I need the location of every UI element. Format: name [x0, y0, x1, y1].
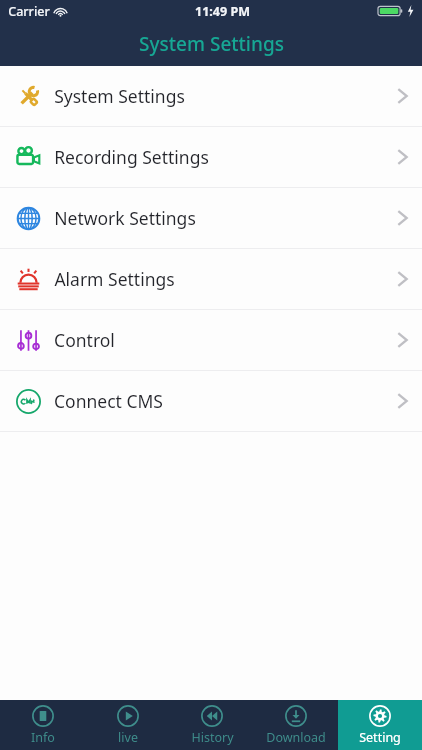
staticText: Alarm Settings: [54, 267, 175, 291]
button[interactable]: Recording Settings: [0, 127, 422, 187]
staticText: Setting: [359, 729, 401, 746]
staticText: Download: [266, 729, 326, 746]
staticText: Control: [54, 328, 115, 352]
button[interactable]: Info: [0, 700, 85, 750]
button[interactable]: Alarm Settings: [0, 249, 422, 309]
button[interactable]: Download: [254, 700, 338, 750]
button[interactable]: History: [170, 700, 254, 750]
button[interactable]: Connect CMS: [0, 371, 422, 431]
staticText: live: [118, 729, 138, 746]
button[interactable]: Network Settings: [0, 188, 422, 248]
button[interactable]: Control: [0, 310, 422, 370]
staticText: System Settings: [54, 84, 185, 108]
staticText: Network Settings: [54, 206, 196, 230]
staticText: Recording Settings: [54, 145, 209, 169]
staticText: History: [191, 729, 234, 746]
staticText: Info: [31, 729, 55, 746]
staticText: 11:49 PM: [195, 3, 250, 20]
staticText: Connect CMS: [54, 389, 163, 413]
button[interactable]: System Settings: [0, 66, 422, 126]
button[interactable]: Setting: [338, 700, 422, 750]
staticText: Carrier: [8, 3, 50, 20]
button[interactable]: live: [85, 700, 170, 750]
staticText: System Settings: [139, 31, 284, 57]
